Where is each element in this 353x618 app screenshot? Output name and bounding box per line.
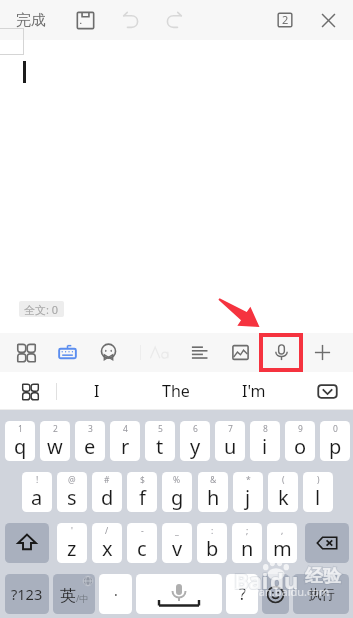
- button[interactable]: 8: [250, 421, 280, 461]
- button[interactable]: 9: [285, 421, 315, 461]
- button[interactable]: Emoji: [262, 574, 289, 614]
- button[interactable]: Voice input: [267, 333, 295, 372]
- button[interactable]: Page count 2: [268, 0, 302, 40]
- staticText: #: [104, 474, 110, 486]
- staticText: l: [315, 484, 321, 511]
- staticText: 0: [333, 423, 338, 435]
- staticText: m: [273, 535, 292, 562]
- button[interactable]: *: [233, 472, 263, 512]
- button[interactable]: @: [57, 472, 87, 512]
- button[interactable]: 0: [320, 421, 350, 461]
- staticText: p: [329, 433, 342, 460]
- staticText: ?: [239, 583, 246, 605]
- staticText: n: [241, 535, 254, 562]
- button[interactable]: Shift: [5, 523, 49, 563]
- staticText: Bai: [234, 565, 269, 595]
- staticText: o: [294, 433, 307, 460]
- staticText: *: [246, 474, 251, 486]
- button[interactable]: 7: [215, 421, 245, 461]
- staticText: ): [317, 474, 320, 486]
- staticText: w: [47, 433, 63, 460]
- staticText: f: [139, 484, 146, 511]
- staticText: k: [278, 484, 289, 511]
- staticText: 2: [282, 12, 289, 27]
- button[interactable]: Keyboard layouts: [8, 372, 52, 410]
- button[interactable]: 英: [53, 574, 95, 614]
- button[interactable]: #: [92, 472, 122, 512]
- button[interactable]: Space: [136, 574, 222, 614]
- staticText: a: [31, 484, 43, 511]
- staticText: 经验: [305, 565, 341, 588]
- staticText: ': [71, 525, 73, 537]
- staticText: x: [102, 535, 113, 562]
- button[interactable]: 完成: [6, 0, 56, 40]
- button[interactable]: Backspace: [305, 523, 349, 563]
- button[interactable]: Save: [68, 0, 102, 40]
- button[interactable]: ·: [99, 574, 132, 614]
- button[interactable]: !: [22, 472, 52, 512]
- button[interactable]: 3: [75, 421, 105, 461]
- button[interactable]: $: [127, 472, 157, 512]
- staticText: 3: [88, 423, 93, 435]
- button[interactable]: Redo: [157, 0, 191, 40]
- button[interactable]: ?123: [5, 574, 49, 614]
- staticText: 1: [18, 423, 23, 435]
- button[interactable]: /: [92, 523, 122, 563]
- staticText: 完成: [16, 11, 46, 30]
- button[interactable]: Image: [226, 333, 254, 372]
- button[interactable]: %: [162, 472, 192, 512]
- staticText: :: [211, 525, 214, 537]
- button[interactable]: 6: [180, 421, 210, 461]
- button[interactable]: ): [303, 472, 333, 512]
- button[interactable]: &: [198, 472, 228, 512]
- button[interactable]: 5: [145, 421, 175, 461]
- button[interactable]: ,: [267, 523, 297, 563]
- button[interactable]: :: [197, 523, 227, 563]
- button[interactable]: 4: [110, 421, 140, 461]
- staticText: i: [262, 433, 268, 460]
- button[interactable]: Apps: [12, 333, 40, 372]
- button[interactable]: I: [61, 372, 133, 410]
- staticText: g: [171, 484, 184, 511]
- staticText: /中: [76, 592, 89, 604]
- button[interactable]: Hide keyboard: [305, 372, 349, 410]
- staticText: u: [224, 433, 237, 460]
- staticText: v: [172, 535, 183, 562]
- staticText: _: [175, 525, 179, 537]
- button[interactable]: ;: [232, 523, 262, 563]
- button[interactable]: List: [185, 333, 213, 372]
- button[interactable]: (: [268, 472, 298, 512]
- button[interactable]: 1: [5, 421, 35, 461]
- button[interactable]: Emoji: [94, 333, 122, 372]
- button[interactable]: I'm: [218, 372, 290, 410]
- button[interactable]: -: [127, 523, 157, 563]
- staticText: Bai: [234, 565, 269, 595]
- staticText: ?123: [11, 584, 43, 604]
- button[interactable]: Undo: [113, 0, 147, 40]
- staticText: 7: [228, 423, 233, 435]
- staticText: d: [101, 484, 114, 511]
- staticText: t: [156, 433, 164, 460]
- button[interactable]: 执行: [293, 574, 349, 614]
- button[interactable]: Add: [308, 333, 336, 372]
- staticText: &: [210, 474, 217, 486]
- staticText: j: [245, 484, 251, 511]
- staticText: c: [137, 535, 147, 562]
- staticText: (: [282, 474, 285, 486]
- button[interactable]: The: [140, 372, 212, 410]
- staticText: 8: [263, 423, 268, 435]
- staticText: jingyan.baidu.com: [234, 584, 330, 599]
- staticText: b: [206, 535, 219, 562]
- staticText: 经验: [305, 565, 341, 588]
- button[interactable]: Close: [311, 0, 345, 40]
- button[interactable]: ?: [226, 574, 258, 614]
- button[interactable]: 2: [40, 421, 70, 461]
- staticText: ·: [114, 585, 118, 604]
- button[interactable]: _: [162, 523, 192, 563]
- staticText: @: [68, 474, 76, 486]
- button[interactable]: ': [57, 523, 87, 563]
- staticText: 2: [53, 423, 58, 435]
- button[interactable]: Keyboard: [53, 333, 81, 372]
- staticText: h: [207, 484, 220, 511]
